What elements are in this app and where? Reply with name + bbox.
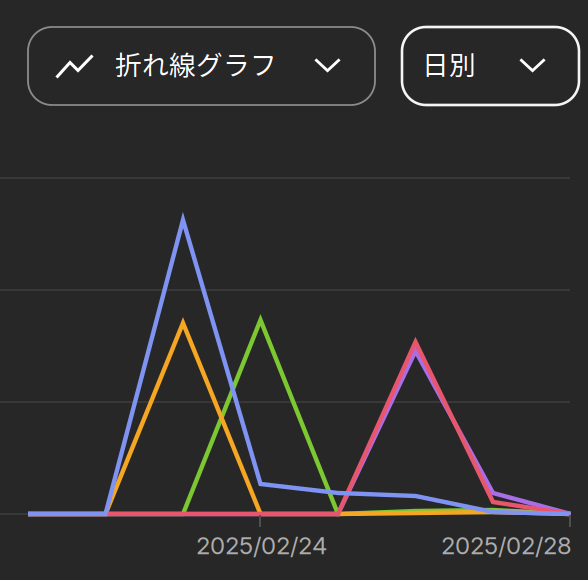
staticText: 2025/02/28 [441,531,572,560]
button[interactable]: 折れ線グラフ [28,27,375,105]
staticText: 折れ線グラフ [115,44,277,83]
staticText: 日別 [422,44,476,83]
staticText: 2025/02/24 [196,531,327,560]
button[interactable]: 日別 [402,27,579,105]
